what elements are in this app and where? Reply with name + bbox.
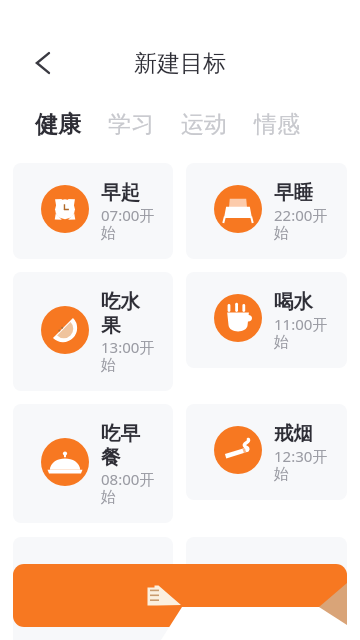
button[interactable]: 情感 [254,110,300,139]
button[interactable]: 吃早餐 [13,404,173,523]
staticText: 新建目标 [134,49,226,78]
staticText: 13:00开始 [101,337,157,374]
staticText: 情感 [254,110,300,139]
staticText: 喝水 [274,289,313,314]
staticText: 12:30开始 [274,446,330,483]
staticText: 学习 [108,110,154,139]
staticText: 早起 [101,180,140,205]
button[interactable]: 早起 [13,163,173,259]
button[interactable]: 健康 [35,110,81,139]
button[interactable] [186,537,347,640]
button[interactable]: 喝水 [186,272,347,368]
staticText: 运动 [181,110,227,139]
staticText: 22:00开始 [274,205,330,242]
button[interactable]: 戒烟 [186,404,347,500]
button[interactable] [13,537,173,640]
staticText: 吃水果 [101,289,157,337]
staticText: 戒烟 [274,421,313,446]
button[interactable]: 确定 [13,564,347,627]
staticText: 11:00开始 [274,314,330,351]
staticText: 08:00开始 [101,469,157,506]
button[interactable]: 运动 [181,110,227,139]
staticText: 吃早餐 [101,421,157,469]
button[interactable]: 早睡 [186,163,347,259]
button[interactable]: Back [25,45,61,81]
staticText: 07:00开始 [101,205,157,242]
button[interactable]: 学习 [108,110,154,139]
button[interactable]: 吃水果 [13,272,173,391]
staticText: 早睡 [274,180,313,205]
staticText: 健康 [35,110,81,139]
